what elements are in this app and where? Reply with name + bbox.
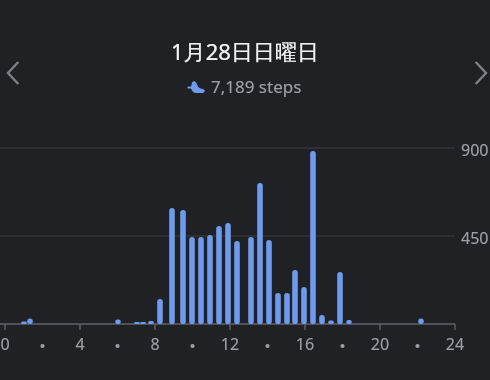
- staticText: 12: [216, 333, 244, 355]
- staticText: 4: [66, 333, 94, 355]
- staticText: 1月28日日曜日: [171, 36, 319, 66]
- staticText: 8: [141, 333, 169, 355]
- staticText: 0: [0, 333, 19, 355]
- staticText: 16: [291, 333, 319, 355]
- staticText: 450: [461, 227, 489, 249]
- staticText: 7,189 steps: [211, 75, 302, 98]
- staticText: 24: [441, 333, 469, 355]
- staticText: 20: [366, 333, 394, 355]
- button[interactable]: Next day: [467, 53, 490, 93]
- staticText: 900: [461, 139, 489, 161]
- button[interactable]: Previous day: [0, 53, 27, 93]
